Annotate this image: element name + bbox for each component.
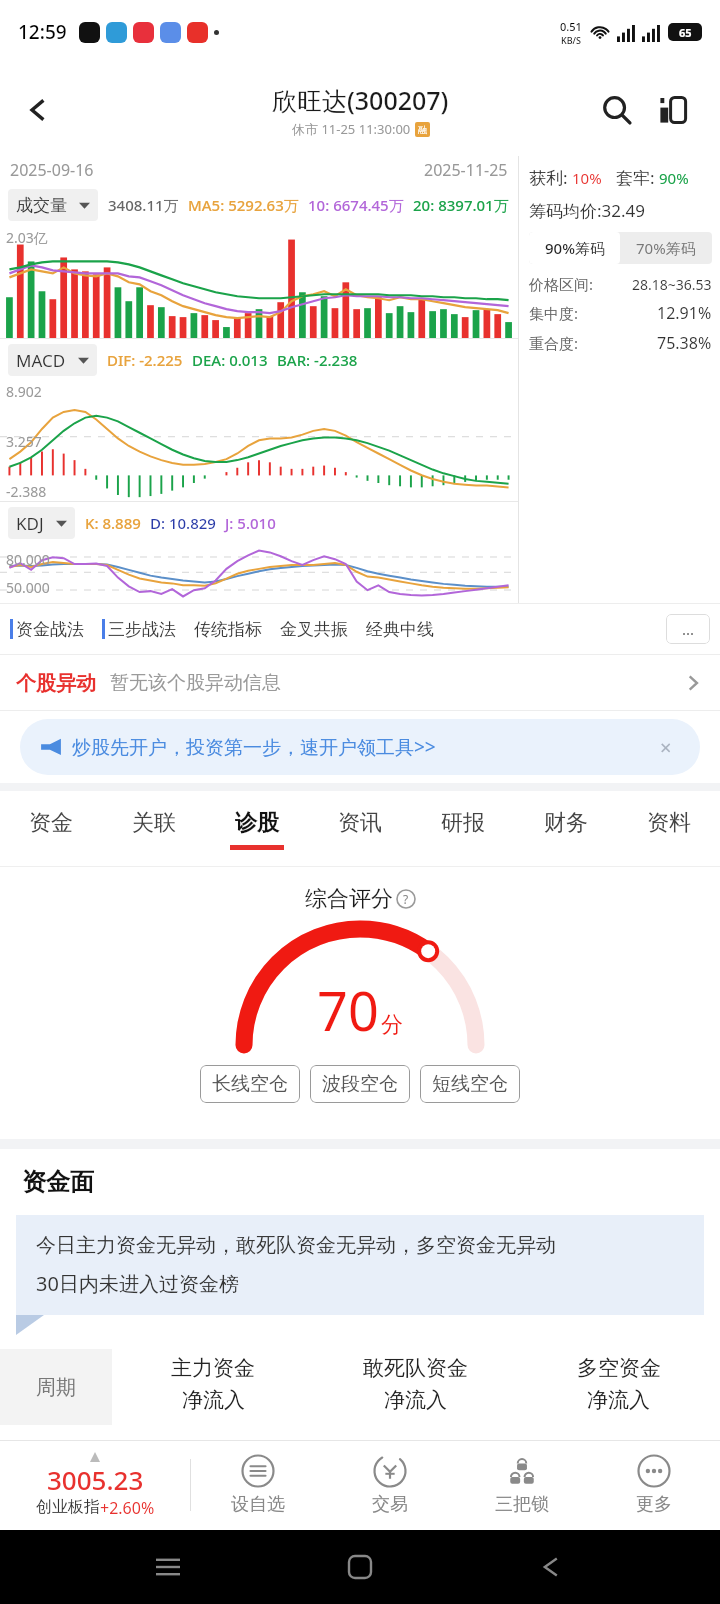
- button[interactable]: 交易: [324, 1440, 456, 1530]
- button[interactable]: Close ad: [652, 733, 680, 761]
- button[interactable]: MACD: [8, 344, 97, 376]
- staticText: 融: [418, 124, 427, 135]
- staticText: 2025-09-16: [10, 159, 94, 181]
- button[interactable]: Back: [528, 1543, 576, 1591]
- button[interactable]: Layout: [648, 85, 698, 135]
- staticText: 资金战法: [16, 619, 84, 640]
- button[interactable]: 个股异动: [0, 655, 720, 711]
- staticText: 财务: [544, 809, 588, 837]
- staticText: 12.91%: [657, 302, 712, 324]
- staticText: 主力资金: [171, 1355, 255, 1381]
- staticText: 3005.23: [47, 1462, 144, 1497]
- staticText: 综合评分: [305, 885, 393, 913]
- button[interactable]: 更多: [588, 1440, 720, 1530]
- staticText: 65: [679, 25, 692, 40]
- staticText: 80.000: [6, 550, 50, 569]
- staticText: 设自选: [231, 1493, 285, 1516]
- staticText: 90%筹码: [545, 238, 605, 258]
- button[interactable]: 设自选: [191, 1440, 324, 1530]
- button[interactable]: 炒股先开户，投资第一步，速开户领工具>>: [20, 719, 700, 775]
- staticText: 10%: [572, 168, 602, 188]
- staticText: 长线空仓: [212, 1072, 288, 1096]
- staticText: 分: [381, 1011, 403, 1039]
- button[interactable]: Back: [0, 64, 76, 156]
- staticText: 诊股: [235, 809, 279, 837]
- staticText: DIF: -2.225: [107, 350, 183, 370]
- staticText: 12:59: [18, 19, 67, 45]
- button[interactable]: 波段空仓: [310, 1065, 410, 1103]
- staticText: 多空资金: [577, 1355, 661, 1381]
- staticText: 资金: [29, 809, 73, 837]
- button[interactable]: 诊股: [205, 791, 308, 867]
- staticText: 敢死队资金: [363, 1355, 468, 1381]
- staticText: 三步战法: [108, 619, 176, 640]
- staticText: ?: [403, 891, 409, 907]
- staticText: 短线空仓: [432, 1072, 508, 1096]
- button[interactable]: Score help: [396, 889, 416, 909]
- staticText: 75.38%: [657, 332, 712, 354]
- staticText: 70%筹码: [636, 238, 696, 258]
- staticText: 2025-11-25: [424, 159, 508, 181]
- staticText: 资讯: [338, 809, 382, 837]
- staticText: 套牢:: [616, 166, 659, 189]
- staticText: +2.60%: [100, 1497, 155, 1519]
- staticText: 8.902: [6, 382, 42, 401]
- staticText: DEA: 0.013: [192, 350, 268, 370]
- staticText: MA5: 5292.63万: [188, 195, 299, 215]
- staticText: ×: [660, 734, 672, 761]
- staticText: 交易: [372, 1493, 408, 1516]
- staticText: 成交量: [16, 195, 67, 216]
- button[interactable]: 3005.23: [0, 1440, 190, 1530]
- button[interactable]: 财务: [514, 791, 617, 867]
- button[interactable]: 70%筹码: [620, 232, 712, 264]
- button[interactable]: 资金: [0, 791, 102, 867]
- button[interactable]: 资料: [617, 791, 720, 867]
- staticText: 金叉共振: [280, 619, 348, 640]
- staticText: 欣旺达(300207): [272, 83, 449, 117]
- staticText: 0.51: [560, 19, 582, 34]
- staticText: 更多: [636, 1493, 672, 1516]
- button[interactable]: 资讯: [308, 791, 411, 867]
- staticText: 净流入: [587, 1387, 650, 1413]
- staticText: 净流入: [384, 1387, 447, 1413]
- staticText: 净流入: [182, 1387, 245, 1413]
- staticText: 3408.11万: [108, 195, 179, 215]
- button[interactable]: 经典中线: [366, 603, 434, 655]
- button[interactable]: 传统指标: [194, 603, 262, 655]
- button[interactable]: KDJ: [8, 507, 75, 539]
- staticText: 3.257: [6, 432, 42, 451]
- button[interactable]: 金叉共振: [280, 603, 348, 655]
- staticText: MACD: [16, 349, 66, 372]
- staticText: KB/S: [561, 34, 581, 46]
- staticText: 价格区间:: [529, 274, 594, 294]
- button[interactable]: 研报: [411, 791, 514, 867]
- staticText: 传统指标: [194, 619, 262, 640]
- staticText: 10: 6674.45万: [308, 195, 404, 215]
- staticText: 休市 11-25 11:30:00: [292, 120, 411, 138]
- button[interactable]: More indicators: [666, 614, 710, 644]
- staticText: 28.18~36.53: [632, 275, 712, 294]
- staticText: 资料: [647, 809, 691, 837]
- button[interactable]: 三步战法: [102, 603, 176, 655]
- staticText: D: 10.829: [150, 513, 216, 533]
- staticText: 炒股先开户，投资第一步，速开户领工具>>: [72, 734, 436, 760]
- button[interactable]: 关联: [102, 791, 205, 867]
- staticText: 50.000: [6, 578, 50, 597]
- button[interactable]: 短线空仓: [420, 1065, 520, 1103]
- button[interactable]: 资金战法: [10, 603, 84, 655]
- button[interactable]: Home: [336, 1543, 384, 1591]
- button[interactable]: 成交量: [8, 189, 98, 221]
- staticText: K: 8.889: [85, 513, 141, 533]
- button[interactable]: 长线空仓: [200, 1065, 300, 1103]
- staticText: 经典中线: [366, 619, 434, 640]
- staticText: BAR: -2.238: [277, 350, 358, 370]
- button[interactable]: 三把锁: [456, 1440, 588, 1530]
- staticText: 研报: [441, 809, 485, 837]
- staticText: -2.388: [6, 482, 47, 501]
- button[interactable]: Search: [592, 85, 642, 135]
- staticText: 资金面: [22, 1167, 94, 1197]
- button[interactable]: Recents: [144, 1543, 192, 1591]
- staticText: 今日主力资金无异动，敢死队资金无异动，多空资金无异动: [36, 1233, 556, 1258]
- button[interactable]: 90%筹码: [529, 232, 620, 264]
- staticText: 周期: [36, 1375, 76, 1400]
